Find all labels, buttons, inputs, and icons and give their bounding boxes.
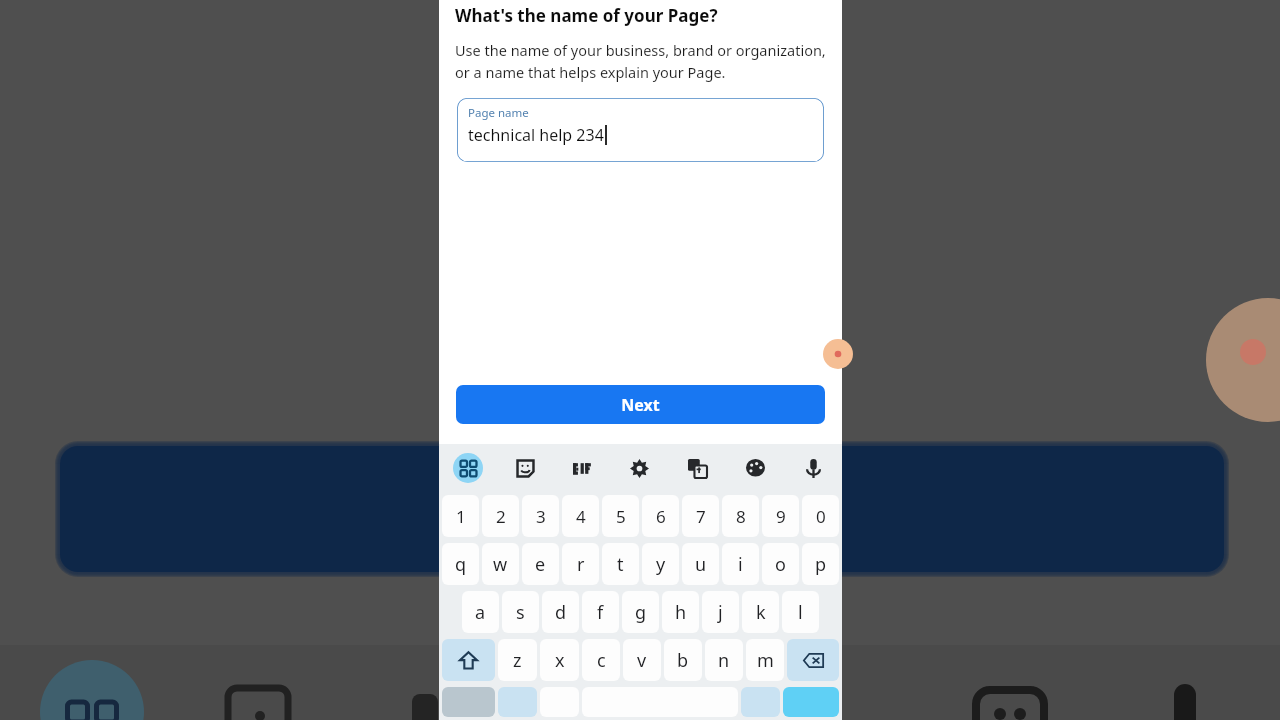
staticText: r	[577, 552, 585, 577]
button[interactable]: Backspace	[787, 639, 839, 681]
staticText: h	[675, 600, 687, 625]
staticText: 7	[696, 505, 706, 528]
button[interactable]: i	[722, 543, 759, 585]
staticText: y	[656, 552, 666, 577]
button[interactable]: p	[802, 543, 839, 585]
staticText: 0	[816, 505, 826, 528]
staticText: d	[555, 600, 567, 625]
staticText: Page name	[468, 105, 529, 121]
staticText: 6	[656, 505, 666, 528]
staticText: z	[513, 648, 522, 673]
staticText: f	[597, 600, 604, 625]
button[interactable]: Emoji	[498, 687, 537, 717]
button[interactable]: Stickers	[496, 444, 553, 492]
staticText: o	[775, 552, 786, 577]
staticText: n	[718, 648, 730, 673]
button[interactable]: Next	[456, 385, 825, 424]
button[interactable]: Shift	[442, 639, 495, 681]
button[interactable]: Themes	[726, 444, 784, 492]
button[interactable]: o	[762, 543, 799, 585]
button[interactable]: 6	[642, 495, 679, 537]
button[interactable]: q	[442, 543, 479, 585]
button[interactable]: f	[582, 591, 619, 633]
button[interactable]: n	[705, 639, 743, 681]
button[interactable]: h	[662, 591, 699, 633]
staticText: k	[756, 600, 766, 625]
staticText: 2	[496, 505, 506, 528]
staticText: 3	[536, 505, 546, 528]
button[interactable]: 3	[522, 495, 559, 537]
button[interactable]: 8	[722, 495, 759, 537]
staticText: m	[757, 648, 774, 673]
button[interactable]: w	[482, 543, 519, 585]
staticText: s	[516, 600, 525, 625]
button[interactable]: GIF	[553, 444, 610, 492]
button[interactable]: Enter	[783, 687, 839, 717]
staticText: Next	[621, 394, 660, 416]
staticText: q	[455, 552, 467, 577]
button[interactable]: d	[542, 591, 579, 633]
button[interactable]: r	[562, 543, 599, 585]
button[interactable]: k	[742, 591, 779, 633]
button[interactable]: e	[522, 543, 559, 585]
button[interactable]: 5	[602, 495, 639, 537]
button[interactable]: m	[746, 639, 784, 681]
staticText: a	[475, 600, 486, 625]
staticText: t	[617, 552, 624, 577]
button[interactable]: 1	[442, 495, 479, 537]
staticText: w	[493, 552, 508, 577]
staticText: 5	[616, 505, 626, 528]
staticText: e	[535, 552, 546, 577]
staticText: b	[677, 648, 689, 673]
button[interactable]: Page name	[457, 98, 824, 162]
button[interactable]: Settings	[610, 444, 668, 492]
staticText: technical help 234	[468, 124, 604, 146]
button[interactable]: Voice input	[784, 444, 842, 492]
button[interactable]: x	[540, 639, 579, 681]
button[interactable]: c	[582, 639, 620, 681]
button[interactable]: v	[623, 639, 661, 681]
button[interactable]: j	[702, 591, 739, 633]
button[interactable]: t	[602, 543, 639, 585]
button[interactable]: y	[642, 543, 679, 585]
button[interactable]: z	[498, 639, 537, 681]
staticText: j	[718, 600, 723, 625]
button[interactable]: s	[502, 591, 539, 633]
staticText: v	[637, 648, 647, 673]
staticText: i	[738, 552, 743, 577]
button[interactable]: l	[782, 591, 819, 633]
staticText: x	[555, 648, 565, 673]
button[interactable]: a	[462, 591, 499, 633]
button[interactable]: 9	[762, 495, 799, 537]
button[interactable]: Apps	[439, 444, 496, 492]
button[interactable]: 2	[482, 495, 519, 537]
staticText: Use the name of your business, brand or …	[455, 40, 828, 82]
button[interactable]: b	[664, 639, 702, 681]
button[interactable]: Period	[741, 687, 780, 717]
staticText: p	[815, 552, 827, 577]
staticText: c	[597, 648, 606, 673]
button[interactable]: 0	[802, 495, 839, 537]
button[interactable]: g	[622, 591, 659, 633]
staticText: g	[635, 600, 647, 625]
staticText: 4	[576, 505, 586, 528]
staticText: 8	[736, 505, 746, 528]
button[interactable]: Translate	[668, 444, 726, 492]
staticText: 9	[776, 505, 786, 528]
button[interactable]: u	[682, 543, 719, 585]
staticText: u	[695, 552, 707, 577]
staticText: 1	[456, 505, 466, 528]
staticText: l	[798, 600, 803, 625]
staticText: What's the name of your Page?	[455, 4, 718, 27]
button[interactable]: 4	[562, 495, 599, 537]
button[interactable]: Symbols	[442, 687, 495, 717]
button[interactable]: 7	[682, 495, 719, 537]
